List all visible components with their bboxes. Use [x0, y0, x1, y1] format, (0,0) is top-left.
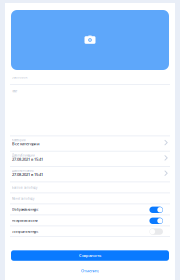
button[interactable]: Не скрывать заявки [5, 215, 175, 226]
staticText: Монет за победу [12, 197, 34, 200]
button[interactable]: Отображать конкурс [5, 204, 175, 215]
staticText: Отображать конкурс [12, 208, 38, 211]
staticText: Дата публикации [12, 154, 35, 157]
button[interactable]: Баллов за победу [5, 182, 175, 193]
staticText: Завершить конкурс [12, 230, 38, 233]
button[interactable]: Завершить конкурс [5, 226, 175, 237]
button[interactable]: Категория [5, 136, 175, 152]
staticText: Баллов за победу [12, 186, 37, 189]
button[interactable]: Монет за победу [5, 193, 175, 204]
button[interactable]: Добавить фото [5, 3, 175, 70]
staticText: 27.08.2021 в 15:41 [12, 172, 43, 177]
button[interactable]: Отменить [5, 261, 175, 278]
staticText: Все категории [12, 141, 40, 146]
staticText: Заголовок [12, 76, 27, 79]
staticText: Не скрывать заявки [12, 219, 38, 222]
staticText: Сохранить [79, 253, 101, 258]
button[interactable]: Дата окончания [5, 167, 175, 182]
staticText: 27.08.2021 в 15:41 [12, 156, 43, 162]
staticText: Дата окончания [12, 169, 34, 172]
staticText: Категория [12, 138, 26, 142]
button[interactable]: Сохранить [5, 237, 175, 261]
staticText: Текст [12, 89, 17, 93]
staticText: Отменить [81, 268, 99, 273]
button[interactable]: Заголовок [5, 70, 175, 85]
button[interactable]: Дата публикации [5, 152, 175, 167]
